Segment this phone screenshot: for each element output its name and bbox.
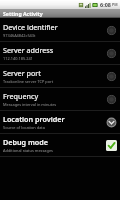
staticText: Debug mode <box>3 137 48 147</box>
staticText: Source of location data <box>3 125 45 130</box>
staticText: 6:08 <box>100 1 111 8</box>
button[interactable]: Debug mode <box>0 134 120 156</box>
button[interactable]: Device identifier <box>106 25 117 36</box>
staticText: Setting Activity <box>3 10 43 17</box>
button[interactable]: Frequency <box>0 88 120 110</box>
button[interactable]: Location provider <box>106 117 117 128</box>
staticText: Device identifier <box>3 22 58 32</box>
button[interactable]: Location provider <box>0 111 120 133</box>
button[interactable]: Server address <box>0 42 120 64</box>
button[interactable]: Device identifier <box>0 19 120 41</box>
staticText: Trackonline server TCP port <box>3 79 54 84</box>
staticText: 97346A4842c543t <box>3 33 36 38</box>
staticText: Server address <box>3 45 54 55</box>
staticText: Additional status messages <box>3 148 53 153</box>
staticText: Messages interval in minutes <box>3 102 57 107</box>
staticText: Server port <box>3 68 41 78</box>
staticText: Frequency <box>3 91 39 101</box>
button[interactable]: Server port <box>0 65 120 87</box>
staticText: PM <box>112 2 118 7</box>
staticText: 112.140.185.241 <box>3 56 33 61</box>
button[interactable]: Server address <box>106 48 117 59</box>
button[interactable]: Debug mode <box>106 140 117 151</box>
button[interactable]: Frequency <box>106 94 117 105</box>
staticText: Location provider <box>3 114 65 124</box>
button[interactable]: Server port <box>106 71 117 82</box>
